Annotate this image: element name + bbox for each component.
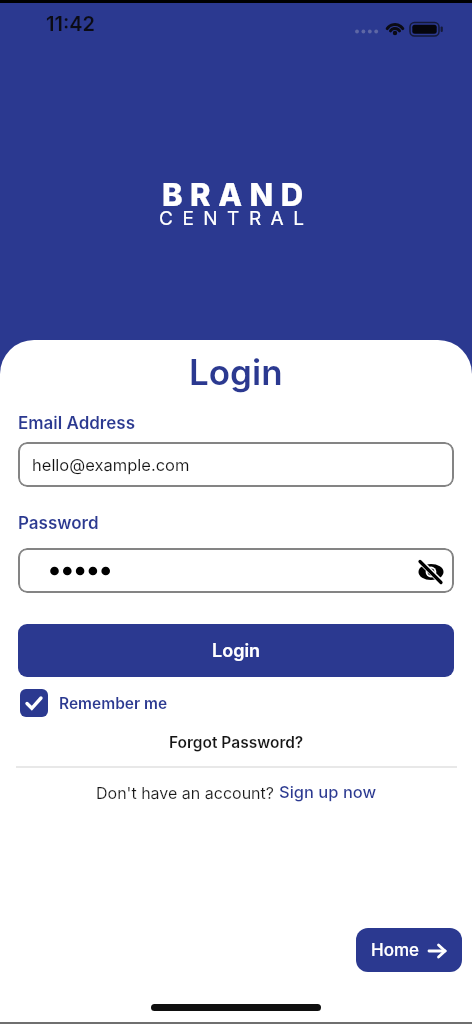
button[interactable] [18, 548, 454, 593]
staticText: Home [371, 940, 420, 961]
staticText: hello@example.com [32, 455, 190, 475]
staticText: CENTRAL [159, 207, 314, 229]
button[interactable]: Forgot Password? [169, 733, 304, 752]
button[interactable]: Login [18, 624, 454, 677]
button[interactable]: hello@example.com [18, 442, 454, 487]
staticText: Don't have an account? [96, 783, 279, 802]
button[interactable]: Remember me [20, 689, 168, 717]
staticText: Password [18, 513, 99, 534]
staticText: Login [189, 351, 283, 393]
staticText: Email Address [18, 413, 135, 434]
button[interactable]: Sign up now [279, 782, 377, 802]
staticText: 11:42 [46, 12, 96, 36]
staticText: Login [212, 640, 261, 662]
staticText: Remember me [59, 694, 168, 713]
staticText: BRAND [162, 176, 311, 206]
button[interactable]: Home [356, 928, 462, 972]
